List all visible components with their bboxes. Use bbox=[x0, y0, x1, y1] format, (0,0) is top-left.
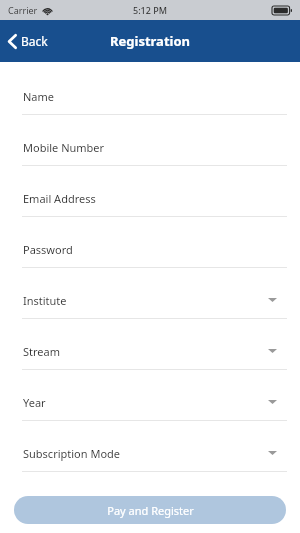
other: Open Stream list bbox=[268, 348, 277, 354]
button[interactable]: Institute bbox=[0, 282, 300, 333]
staticText: Pay and Register bbox=[107, 503, 194, 518]
staticText: Name bbox=[23, 89, 55, 104]
button[interactable]: Pay and Register bbox=[14, 496, 286, 524]
button[interactable]: Password bbox=[0, 231, 300, 282]
staticText: Email Address bbox=[23, 191, 96, 206]
other: Open Subscription Mode list bbox=[268, 450, 277, 456]
staticText: Mobile Number bbox=[23, 140, 105, 155]
staticText: Password bbox=[23, 242, 73, 257]
button[interactable]: Back bbox=[0, 27, 58, 55]
other: Open Institute list bbox=[268, 297, 277, 303]
button[interactable]: Mobile Number bbox=[0, 129, 300, 180]
staticText: Registration bbox=[110, 32, 191, 50]
staticText: Year bbox=[23, 395, 46, 410]
button[interactable]: Email Address bbox=[0, 180, 300, 231]
staticText: Stream bbox=[23, 344, 60, 359]
staticText: Subscription Mode bbox=[23, 446, 121, 461]
button[interactable]: Subscription Mode bbox=[0, 435, 300, 486]
staticText: Carrier bbox=[8, 4, 38, 16]
staticText: 5:12 PM bbox=[133, 4, 167, 16]
button[interactable]: Stream bbox=[0, 333, 300, 384]
staticText: Institute bbox=[23, 293, 67, 308]
other: Open Year list bbox=[268, 399, 277, 405]
button[interactable]: Year bbox=[0, 384, 300, 435]
button[interactable]: Name bbox=[0, 78, 300, 129]
staticText: Back bbox=[21, 33, 48, 49]
